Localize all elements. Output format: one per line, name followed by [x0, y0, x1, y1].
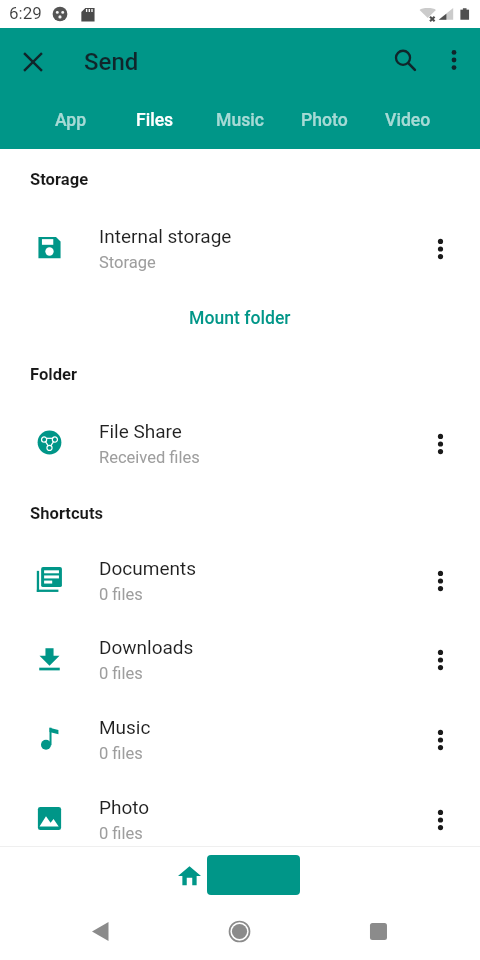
button[interactable]: Video [366, 92, 450, 149]
staticText: 0 files [99, 664, 143, 683]
staticText: Downloads [99, 636, 194, 658]
button[interactable]: App [29, 92, 113, 149]
button[interactable]: Documents [0, 540, 480, 618]
staticText: Storage [99, 253, 156, 272]
staticText: 0 files [99, 824, 143, 843]
button[interactable]: Send [207, 855, 300, 895]
staticText: 0 files [99, 585, 143, 604]
staticText: Music [99, 716, 151, 738]
button[interactable]: Photo [282, 92, 366, 149]
staticText: App [55, 110, 87, 131]
staticText: Internal storage [99, 225, 232, 247]
button[interactable]: Close [10, 39, 55, 84]
staticText: Documents [99, 557, 196, 579]
staticText: 6:29 [9, 3, 42, 23]
button[interactable]: Files [113, 92, 197, 149]
staticText: 0 files [99, 744, 143, 763]
staticText: Mount folder [189, 308, 291, 329]
button[interactable]: More options [400, 779, 480, 857]
button[interactable]: Music [198, 92, 282, 149]
button[interactable]: Search [381, 36, 429, 84]
button[interactable]: More options [432, 38, 476, 82]
staticText: Received files [99, 448, 200, 467]
staticText: Photo [99, 796, 150, 818]
staticText: Music [216, 110, 264, 131]
button[interactable]: File Share [0, 403, 480, 481]
button[interactable]: More options [400, 619, 480, 697]
staticText: Folder [30, 365, 78, 384]
button[interactable]: Internal storage [0, 208, 480, 286]
button[interactable]: Photo [0, 779, 480, 857]
button[interactable]: Downloads [0, 619, 480, 697]
button[interactable]: Mount folder [175, 300, 305, 337]
staticText: Files [136, 110, 174, 131]
staticText: Photo [301, 110, 348, 131]
staticText: Video [385, 110, 431, 131]
button[interactable]: Home [167, 853, 211, 897]
button[interactable]: More options [400, 699, 480, 777]
button[interactable]: More options [400, 208, 480, 286]
button[interactable]: More options [400, 540, 480, 618]
button[interactable]: More options [400, 403, 480, 481]
staticText: Shortcuts [30, 504, 104, 523]
staticText: Storage [30, 170, 89, 189]
staticText: Send [84, 48, 139, 76]
staticText: File Share [99, 420, 182, 442]
button[interactable]: Music [0, 699, 480, 777]
